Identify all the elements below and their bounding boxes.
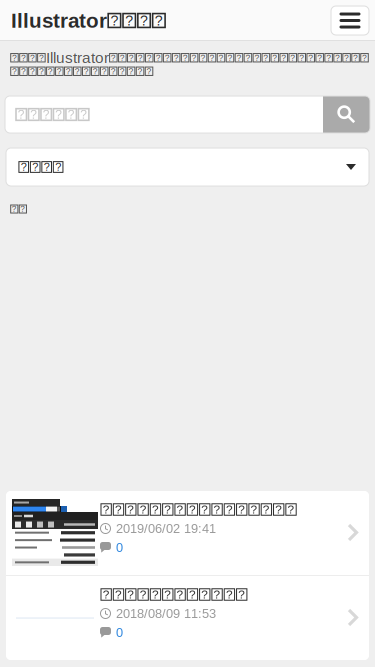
button[interactable]: ? (6, 148, 369, 186)
staticText: ? (214, 588, 221, 601)
staticText: ? (326, 53, 331, 63)
staticText: ? (48, 66, 53, 76)
staticText: ? (299, 53, 304, 63)
staticText: ? (147, 53, 152, 63)
staticText: ? (189, 588, 196, 601)
staticText: ? (55, 161, 61, 173)
staticText: ? (18, 108, 25, 121)
staticText: ? (138, 66, 143, 76)
staticText: ? (93, 66, 98, 76)
staticText: ? (20, 204, 25, 214)
staticText: ? (155, 13, 163, 28)
staticText: ? (227, 53, 232, 63)
staticText: ? (189, 503, 196, 516)
staticText: ? (164, 503, 171, 516)
button[interactable]: Search (323, 96, 370, 133)
staticText: ? (209, 53, 214, 63)
staticText: ? (290, 53, 295, 63)
staticText: ? (68, 108, 75, 121)
staticText: ? (43, 108, 50, 121)
staticText: ? (30, 66, 35, 76)
staticText: ? (129, 66, 134, 76)
staticText: ? (80, 108, 87, 121)
staticText: ? (21, 53, 26, 63)
button[interactable]: Menu (331, 6, 369, 35)
staticText: ? (335, 53, 340, 63)
staticText: ? (152, 503, 159, 516)
staticText: ? (30, 53, 35, 63)
staticText: ? (177, 503, 184, 516)
staticText: ? (120, 66, 125, 76)
button[interactable]: ? (6, 576, 369, 660)
staticText: ? (201, 588, 208, 601)
staticText: ? (30, 108, 37, 121)
staticText: ? (192, 53, 197, 63)
staticText: ? (263, 53, 268, 63)
staticText: ? (226, 588, 233, 601)
staticText: ? (32, 161, 38, 173)
staticText: ? (152, 588, 159, 601)
staticText: ? (164, 588, 171, 601)
staticText: ? (138, 53, 143, 63)
staticText: ? (353, 53, 358, 63)
staticText: ? (103, 588, 110, 601)
staticText: ? (272, 53, 277, 63)
staticText: ? (177, 588, 184, 601)
staticText: ? (254, 53, 259, 63)
staticText: ? (245, 53, 250, 63)
staticText: ? (140, 503, 147, 516)
staticText: ? (263, 503, 270, 516)
staticText: ? (362, 53, 367, 63)
staticText: ? (110, 13, 118, 28)
staticText: ? (39, 53, 44, 63)
staticText: ? (201, 503, 208, 516)
staticText: ? (201, 53, 206, 63)
staticText: ? (75, 66, 80, 76)
staticText: ? (275, 503, 282, 516)
staticText: ? (308, 53, 313, 63)
staticText: ? (129, 53, 134, 63)
staticText: ? (12, 204, 17, 214)
staticText: ? (12, 66, 17, 76)
staticText: ? (156, 53, 161, 63)
staticText: Illustrator (46, 49, 109, 66)
staticText: ? (218, 53, 223, 63)
staticText: ? (236, 53, 241, 63)
staticText: ? (39, 66, 44, 76)
staticText: ? (127, 503, 134, 516)
staticText: ? (317, 53, 322, 63)
staticText: ? (226, 503, 233, 516)
staticText: 2018/08/09 11:53 (116, 606, 216, 621)
staticText: ? (120, 53, 125, 63)
staticText: ? (251, 503, 258, 516)
staticText: ? (21, 66, 26, 76)
staticText: 2019/06/02 19:41 (116, 521, 216, 536)
staticText: ? (140, 13, 148, 28)
button[interactable]: ? (6, 491, 369, 575)
staticText: ? (57, 66, 62, 76)
staticText: 0 (116, 625, 123, 640)
staticText: ? (111, 66, 116, 76)
staticText: ? (102, 66, 107, 76)
staticText: ? (127, 588, 134, 601)
staticText: ? (238, 503, 245, 516)
staticText: ? (165, 53, 170, 63)
staticText: ? (344, 53, 349, 63)
staticText: 0 (116, 540, 123, 555)
staticText: Illustrator (11, 9, 107, 32)
staticText: ? (115, 588, 122, 601)
staticText: ? (103, 503, 110, 516)
staticText: ? (281, 53, 286, 63)
staticText: ? (111, 53, 116, 63)
staticText: ? (66, 66, 71, 76)
staticText: ? (12, 53, 17, 63)
staticText: ? (174, 53, 179, 63)
staticText: ? (125, 13, 133, 28)
staticText: ? (55, 108, 62, 121)
staticText: ? (140, 588, 147, 601)
staticText: ? (44, 161, 50, 173)
staticText: ? (238, 588, 245, 601)
staticText: ? (115, 503, 122, 516)
staticText: ? (84, 66, 89, 76)
staticText: ? (214, 503, 221, 516)
